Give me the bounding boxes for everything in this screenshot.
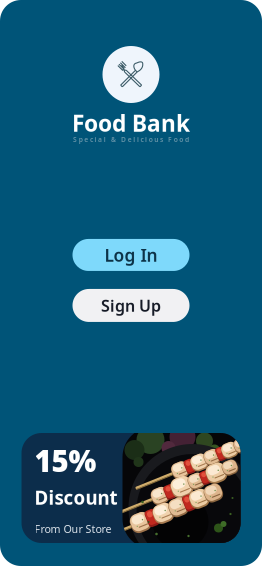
staticText: From Our Store xyxy=(34,522,111,536)
staticText: Sign Up xyxy=(101,295,161,316)
staticText: 15% xyxy=(34,441,96,480)
staticText: Log In xyxy=(104,243,157,266)
staticText: Special & Delicious Food xyxy=(73,135,189,144)
staticText: Food Bank xyxy=(72,108,190,138)
button[interactable]: Sign Up xyxy=(72,289,189,322)
button[interactable]: Log In xyxy=(72,239,189,271)
staticText: Discount xyxy=(34,485,117,510)
